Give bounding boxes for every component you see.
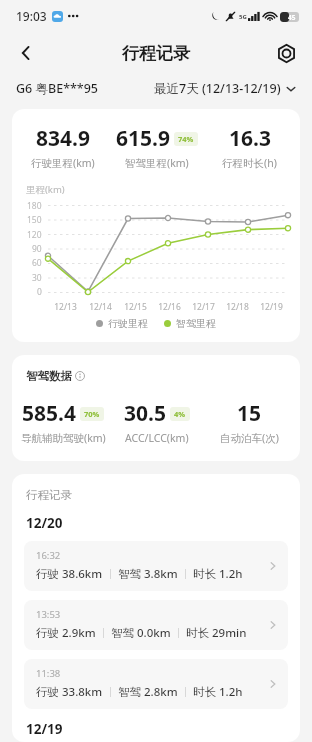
staticText: 自动泊车(次) xyxy=(220,431,279,445)
staticText: 180 xyxy=(27,200,42,212)
staticText: G6 粤BE***95 xyxy=(16,80,98,97)
staticText: 120 xyxy=(27,229,42,241)
staticText: 行程记录 xyxy=(122,43,190,64)
staticText: 11:38 xyxy=(36,667,61,680)
staticText: 12/20 xyxy=(26,514,63,532)
staticText: 12/17 xyxy=(192,301,215,313)
staticText: 0 xyxy=(37,286,42,298)
staticText: 16.3 xyxy=(229,124,271,153)
staticText: 行程记录 xyxy=(26,488,72,502)
staticText: 时长 1.2h xyxy=(193,566,243,582)
staticText: 30 xyxy=(32,272,42,284)
staticText: 时长 1.2h xyxy=(193,684,243,700)
staticText: 12/19 xyxy=(26,720,63,738)
button[interactable]: 最近7天 (12/13-12/19) xyxy=(154,80,296,97)
staticText: 智驾 3.8km xyxy=(118,566,178,582)
button[interactable]: 16:32 xyxy=(24,541,288,591)
staticText: 615.9 xyxy=(116,124,170,153)
staticText: 585.4 xyxy=(22,399,76,428)
staticText: ACC/LCC(km) xyxy=(125,431,189,445)
staticText: 12/18 xyxy=(226,301,249,313)
staticText: 13:53 xyxy=(36,608,61,621)
button[interactable]: Settings xyxy=(268,35,304,71)
staticText: 时长 29min xyxy=(186,625,247,641)
staticText: 90 xyxy=(32,243,42,255)
staticText: 19:03 xyxy=(16,8,47,24)
staticText: 60 xyxy=(32,257,42,269)
staticText: 行程时长(h) xyxy=(222,156,277,170)
staticText: 里程(km) xyxy=(26,183,65,196)
staticText: 5G xyxy=(239,13,247,21)
staticText: 智驾 0.0km xyxy=(111,625,171,641)
staticText: 16:32 xyxy=(36,549,61,562)
button[interactable]: 11:38 xyxy=(24,659,288,709)
staticText: 智驾里程 xyxy=(176,317,216,330)
staticText: 70% xyxy=(84,409,100,419)
button[interactable]: G6 粤BE***95 xyxy=(16,80,98,97)
button[interactable]: Back xyxy=(8,35,44,71)
staticText: 行驶 2.9km xyxy=(36,625,96,641)
staticText: 行驶 33.8km xyxy=(36,684,103,700)
button[interactable]: 13:53 xyxy=(24,600,288,650)
staticText: 智驾数据 xyxy=(26,369,72,383)
staticText: 导航辅助驾驶(km) xyxy=(21,431,106,445)
staticText: 智驾 2.8km xyxy=(118,684,178,700)
staticText: 行驶里程 xyxy=(108,317,148,330)
staticText: 行驶 38.6km xyxy=(36,566,103,582)
staticText: 12/15 xyxy=(124,301,147,313)
staticText: 行驶里程(km) xyxy=(31,156,95,170)
staticText: 45 xyxy=(288,13,296,22)
staticText: 30.5 xyxy=(124,399,166,428)
staticText: 74% xyxy=(178,134,194,144)
button[interactable]: Info xyxy=(75,371,85,381)
staticText: 12/13 xyxy=(54,301,77,313)
staticText: 智驾里程(km) xyxy=(125,156,189,170)
staticText: 834.9 xyxy=(36,124,90,153)
staticText: 15 xyxy=(237,399,262,428)
staticText: 12/16 xyxy=(158,301,181,313)
staticText: 150 xyxy=(27,214,42,226)
staticText: 12/14 xyxy=(89,301,112,313)
staticText: 最近7天 (12/13-12/19) xyxy=(154,80,281,97)
staticText: 4% xyxy=(174,409,186,419)
staticText: 12/19 xyxy=(260,301,283,313)
